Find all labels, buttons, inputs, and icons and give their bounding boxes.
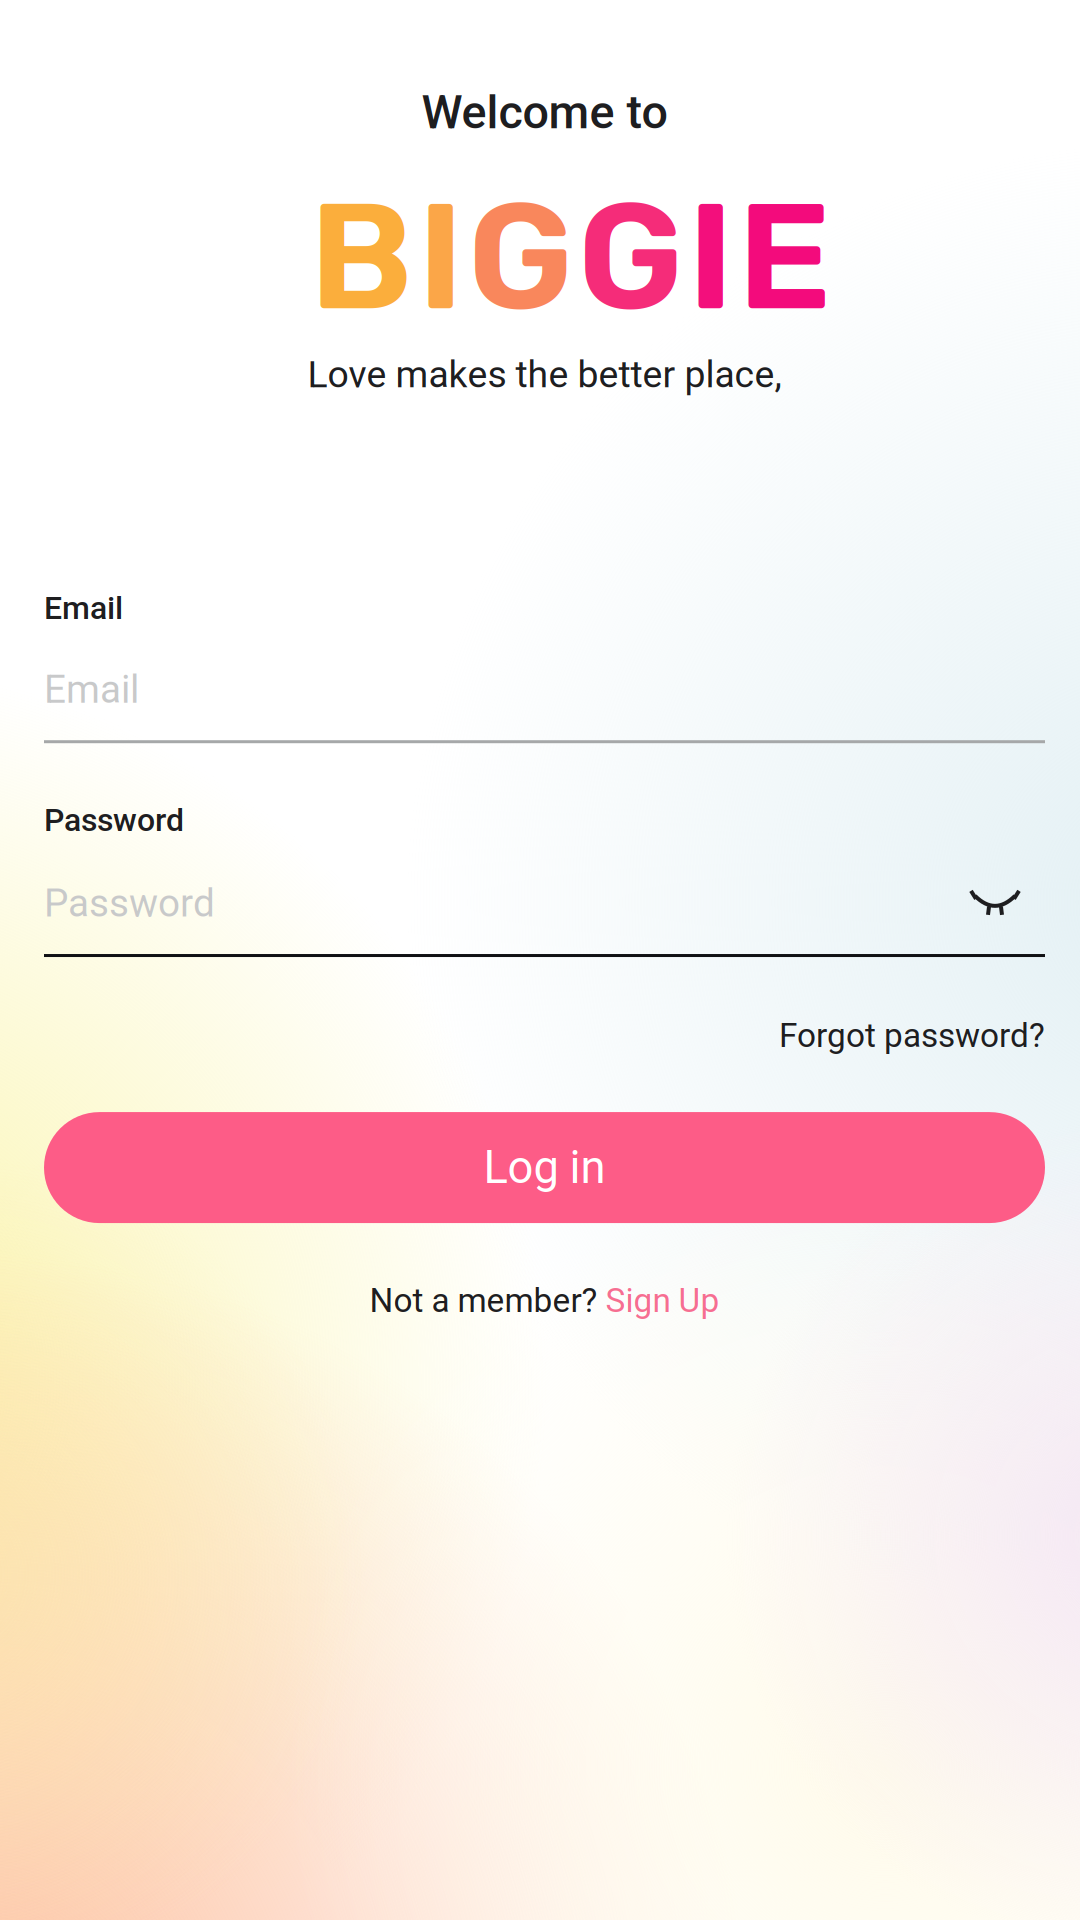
staticText: G <box>577 169 683 346</box>
staticText: Password <box>44 881 215 926</box>
staticText: Sign Up <box>605 1281 719 1320</box>
staticText: Email <box>44 589 123 627</box>
staticText: Log in <box>483 1141 605 1194</box>
staticText: Not a member? <box>369 1281 605 1320</box>
staticText: Welcome to <box>421 85 667 140</box>
staticText: Email <box>44 667 139 712</box>
staticText: Forgot password? <box>779 1016 1045 1055</box>
button[interactable]: Show password <box>971 883 1045 923</box>
staticText: Password <box>44 801 184 839</box>
button[interactable]: Forgot password? <box>779 1016 1045 1055</box>
staticText: Love makes the better place, <box>307 353 781 396</box>
staticText: E <box>737 169 831 346</box>
staticText: I <box>687 169 733 346</box>
staticText: I <box>417 169 463 346</box>
button[interactable]: Sign Up <box>605 1281 719 1320</box>
staticText: B <box>309 169 413 346</box>
button[interactable]: Log in <box>44 1112 1045 1223</box>
staticText: G <box>467 169 573 346</box>
